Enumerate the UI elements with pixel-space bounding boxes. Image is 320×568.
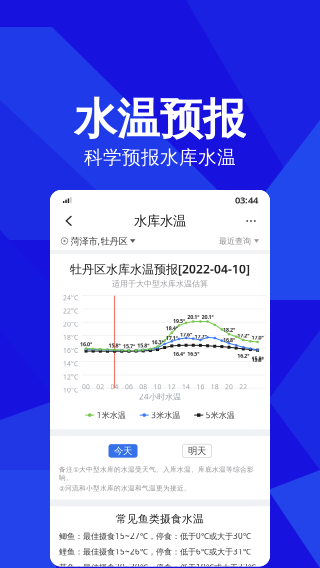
staticText: 14°C xyxy=(63,359,78,368)
button[interactable]: 返回 xyxy=(59,211,79,231)
staticText: 20 xyxy=(225,382,233,391)
staticText: 14 xyxy=(182,382,190,391)
staticText: 菏泽市,牡丹区 xyxy=(70,235,127,247)
button[interactable]: 明天 xyxy=(182,444,211,458)
staticText: 16°C xyxy=(63,346,78,355)
staticText: 草鱼：最佳摄食20~30℃，停食：低于10℃或大于32℃ xyxy=(59,562,256,568)
staticText: 科学预报水库水温 xyxy=(84,146,236,169)
staticText: 17.7° xyxy=(194,333,206,340)
staticText: 10 xyxy=(153,382,161,391)
button[interactable]: 最近查询 xyxy=(219,233,259,249)
staticText: 16.5° xyxy=(187,350,199,357)
staticText: 备注①大中型水库的水温受天气、入库水温、库底水温等综合影响。 xyxy=(59,465,254,482)
staticText: 5米水温 xyxy=(206,410,235,420)
staticText: 17.2° xyxy=(237,332,249,339)
staticText: 常见鱼类摄食水温 xyxy=(116,512,204,526)
button[interactable]: 菏泽市,牡丹区 xyxy=(61,232,135,250)
staticText: 最近查询 xyxy=(219,236,251,246)
staticText: 22°C xyxy=(63,306,78,315)
button[interactable]: 更多 xyxy=(241,211,261,231)
staticText: 16.4° xyxy=(173,350,185,357)
staticText: 12 xyxy=(168,382,176,391)
staticText: 06 xyxy=(125,382,133,391)
staticText: 24小时水温 xyxy=(139,391,181,402)
staticText: 3米水温 xyxy=(151,410,180,420)
staticText: 20.1° xyxy=(202,313,214,321)
staticText: 16.2° xyxy=(237,352,249,359)
staticText: 18.2° xyxy=(223,326,235,333)
staticText: 17.1° xyxy=(166,334,178,341)
staticText: 00 xyxy=(82,382,90,391)
staticText: 17.0° xyxy=(252,334,264,341)
staticText: 水库水温 xyxy=(134,213,186,229)
staticText: 16.8° xyxy=(223,336,235,343)
staticText: 15.8° xyxy=(109,342,121,349)
staticText: 17.6° xyxy=(180,331,192,338)
staticText: 24°C xyxy=(63,293,78,302)
staticText: 20.1° xyxy=(187,313,199,321)
staticText: 适用于大中型水库水温估算 xyxy=(112,279,208,289)
staticText: 04 xyxy=(111,382,119,391)
staticText: 16 xyxy=(196,382,204,391)
staticText: 02 xyxy=(96,382,104,391)
button[interactable]: 今天 xyxy=(108,444,137,458)
staticText: 15.8° xyxy=(137,342,149,349)
staticText: 今天 xyxy=(114,445,132,457)
staticText: 03:44 xyxy=(235,194,258,206)
staticText: 10°C xyxy=(63,386,78,394)
staticText: 18.4° xyxy=(166,325,178,332)
staticText: 12°C xyxy=(63,372,78,381)
staticText: ②河流和小型水库的水温和气温更为接近。 xyxy=(59,484,191,492)
staticText: 18 xyxy=(211,382,219,391)
staticText: 明天 xyxy=(188,445,206,457)
staticText: 16.0° xyxy=(80,341,92,348)
staticText: 16.3° xyxy=(151,339,163,346)
staticText: 水温预报 xyxy=(74,93,246,145)
staticText: 鲤鱼：最佳摄食15~26℃，停食：低于6℃或大于31℃ xyxy=(59,546,251,557)
staticText: 15.7° xyxy=(123,342,135,350)
staticText: 1米水温 xyxy=(97,410,126,420)
staticText: 牡丹区水库水温预报[2022-04-10] xyxy=(70,261,250,277)
staticText: 15.8° xyxy=(252,355,264,362)
staticText: 22 xyxy=(239,382,247,391)
staticText: 19.5° xyxy=(173,317,185,325)
staticText: 15.8° xyxy=(252,356,264,363)
staticText: 20°C xyxy=(63,320,78,328)
staticText: 鲫鱼：最佳摄食15~27℃，停食：低于0℃或大于30℃ xyxy=(59,531,251,541)
staticText: 18°C xyxy=(63,333,78,342)
staticText: 08 xyxy=(139,382,147,391)
